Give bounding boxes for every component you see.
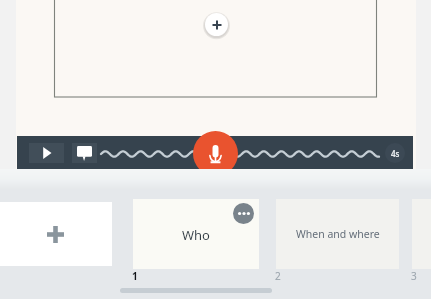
button[interactable]: Record (193, 131, 238, 176)
button[interactable]: More options (233, 203, 254, 224)
staticText: 2 (275, 269, 281, 283)
staticText: Who (182, 226, 210, 244)
button[interactable]: Who (133, 199, 259, 269)
staticText: When and where (296, 227, 380, 241)
button[interactable]: Duration 4 seconds (385, 143, 405, 163)
staticText: 1 (132, 269, 138, 283)
button[interactable]: Add card (0, 202, 112, 266)
button[interactable]: Play (29, 143, 64, 163)
button[interactable]: When and where (276, 199, 399, 269)
button[interactable]: Add (205, 13, 228, 36)
staticText: 3 (411, 269, 417, 283)
staticText: 4s (391, 148, 400, 159)
button[interactable]: Comment (72, 143, 97, 163)
